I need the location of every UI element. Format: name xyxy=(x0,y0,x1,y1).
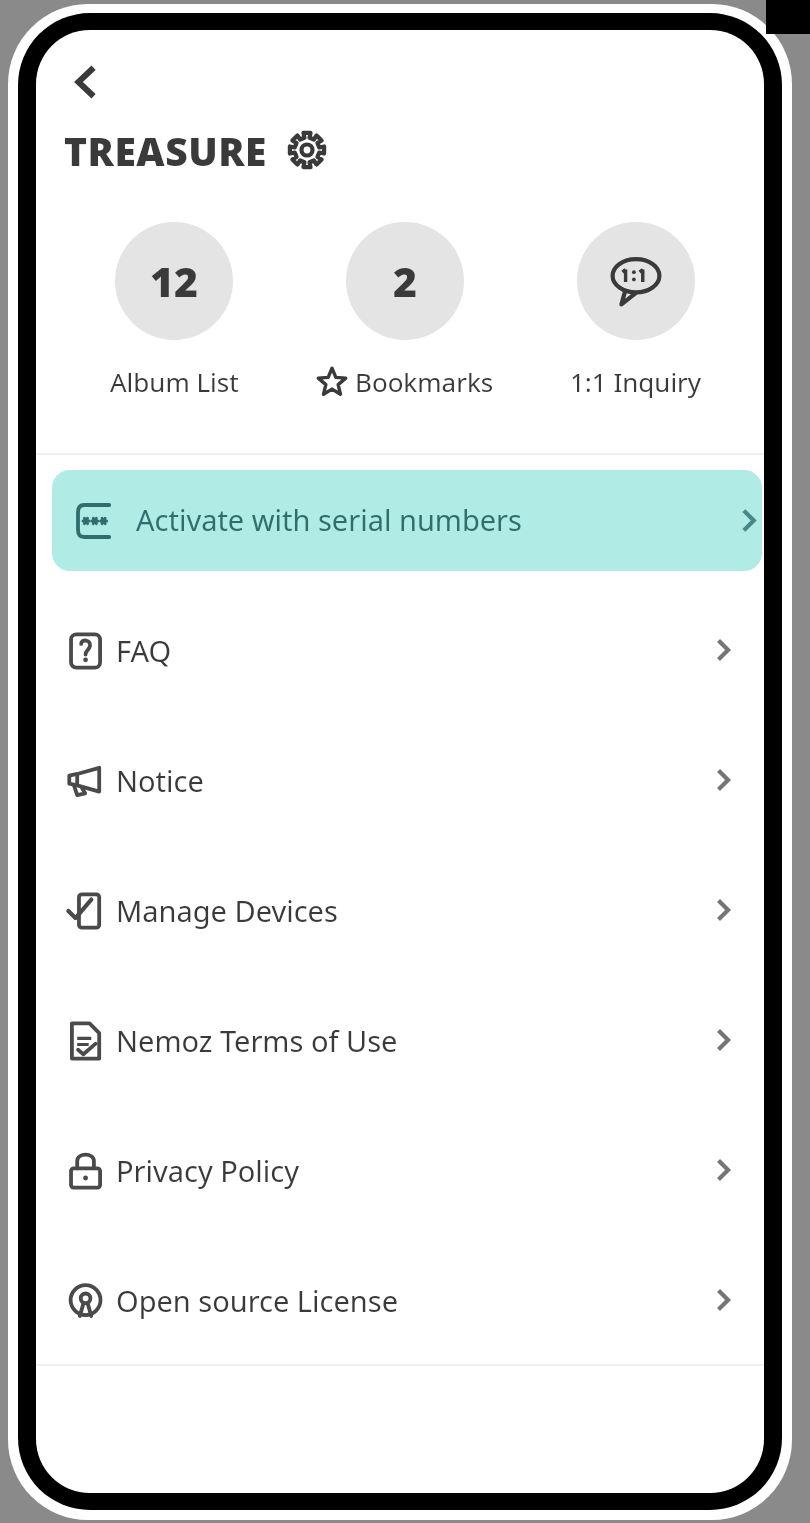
button[interactable]: Back xyxy=(46,42,126,122)
staticText: Album List xyxy=(110,364,239,399)
button[interactable]: Manage Devices xyxy=(36,855,764,967)
staticText: Activate with serial numbers xyxy=(136,500,522,539)
staticText: Privacy Policy xyxy=(116,1151,300,1190)
staticText: FAQ xyxy=(116,631,172,670)
staticText: Notice xyxy=(116,761,204,800)
button[interactable]: Notice xyxy=(36,725,764,837)
button[interactable]: Activate with serial numbers xyxy=(52,470,762,571)
button[interactable]: 2 xyxy=(310,222,500,418)
staticText: 1:1 Inquiry xyxy=(570,364,702,399)
button[interactable]: 12 xyxy=(79,222,269,418)
button[interactable]: Nemoz Terms of Use xyxy=(36,985,764,1097)
staticText: TREASURE xyxy=(64,124,268,177)
staticText: 12 xyxy=(150,253,199,309)
staticText: 2 xyxy=(393,253,418,309)
button[interactable]: Privacy Policy xyxy=(36,1115,764,1227)
button[interactable]: Settings xyxy=(280,123,334,177)
staticText: Nemoz Terms of Use xyxy=(116,1021,398,1060)
staticText: Bookmarks xyxy=(355,364,494,399)
staticText: Manage Devices xyxy=(116,891,338,930)
button[interactable]: FAQ xyxy=(36,595,764,707)
button[interactable]: 1:1 Inquiry xyxy=(541,222,731,418)
staticText: Open source License xyxy=(116,1281,398,1320)
button[interactable]: Open source License xyxy=(36,1245,764,1357)
